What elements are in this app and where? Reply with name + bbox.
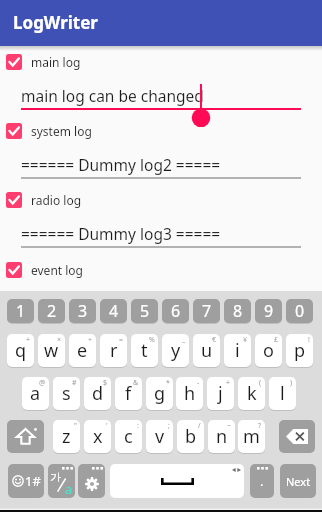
staticText: s <box>62 381 71 406</box>
staticText: t <box>141 338 148 363</box>
button[interactable]: z <box>53 420 80 453</box>
button[interactable]: i <box>224 334 251 367</box>
staticText: ? <box>258 421 262 431</box>
staticText: x <box>93 424 103 449</box>
button[interactable]: main log <box>0 51 322 73</box>
button[interactable]: Space <box>110 464 244 498</box>
staticText: f <box>125 381 132 406</box>
staticText: - <box>197 378 200 388</box>
staticText: h <box>184 381 196 406</box>
staticText: i <box>235 338 240 363</box>
button[interactable]: o <box>255 334 282 367</box>
staticText: + <box>226 378 231 388</box>
button[interactable]: 9 <box>255 299 282 323</box>
staticText: ====== Dummy log2 ===== <box>21 154 221 175</box>
button[interactable]: h <box>176 377 203 410</box>
button[interactable]: system log <box>0 120 322 142</box>
staticText: d <box>92 381 104 406</box>
staticText: 3 <box>78 300 88 322</box>
button[interactable]: Backspace <box>279 420 315 453</box>
staticText: q <box>15 338 27 363</box>
button[interactable]: Settings <box>78 464 105 498</box>
button[interactable]: v <box>146 420 173 453</box>
button[interactable]: q <box>7 334 34 367</box>
staticText: r <box>110 338 118 363</box>
staticText: u <box>201 338 213 363</box>
staticText: 가 <box>50 470 61 484</box>
button[interactable]: 2 <box>38 299 65 323</box>
staticText: 8 <box>233 300 243 322</box>
staticText: z <box>62 424 71 449</box>
button[interactable]: 6 <box>162 299 189 323</box>
button[interactable]: radio log <box>0 189 322 211</box>
staticText: 0 <box>295 300 305 322</box>
staticText: event log <box>31 262 83 278</box>
button[interactable]: m <box>238 420 265 453</box>
staticText: 9 <box>264 300 274 322</box>
staticText: + <box>26 335 31 345</box>
button[interactable]: Language <box>48 464 75 498</box>
staticText: 1 <box>16 300 26 322</box>
button[interactable]: 1 <box>7 299 34 323</box>
staticText: ~ <box>227 421 232 431</box>
button[interactable]: t <box>131 334 158 367</box>
staticText: LogWriter <box>13 11 98 34</box>
button[interactable]: p <box>286 334 313 367</box>
button[interactable]: f <box>115 377 142 410</box>
staticText: ; <box>168 421 170 431</box>
button[interactable]: 4 <box>100 299 127 323</box>
button[interactable]: j <box>207 377 234 410</box>
staticText: radio log <box>31 192 82 208</box>
button[interactable]: s <box>53 377 80 410</box>
staticText: ! <box>308 335 310 345</box>
staticText: # <box>72 378 77 388</box>
staticText: _ <box>182 335 186 345</box>
button[interactable]: k <box>238 377 265 410</box>
staticText: % <box>149 335 155 345</box>
staticText: e <box>77 338 88 363</box>
staticText: 6 <box>171 300 181 322</box>
staticText: j <box>218 381 223 406</box>
button[interactable]: 5 <box>131 299 158 323</box>
button[interactable]: Next <box>280 464 316 498</box>
staticText: k <box>247 381 257 406</box>
button[interactable]: g <box>146 377 173 410</box>
staticText: ¥ <box>243 335 248 345</box>
button[interactable]: n <box>208 420 235 453</box>
button[interactable]: w <box>38 334 65 367</box>
button[interactable]: 0 <box>286 299 313 323</box>
staticText: c <box>124 424 133 449</box>
staticText: $ <box>103 378 108 388</box>
staticText: . <box>260 472 264 490</box>
staticText: / <box>198 421 201 431</box>
staticText: ====== Dummy log3 ===== <box>21 223 221 244</box>
button[interactable]: 8 <box>224 299 251 323</box>
staticText: ÷ <box>88 335 93 345</box>
button[interactable]: y <box>162 334 189 367</box>
button[interactable]: b <box>177 420 204 453</box>
button[interactable]: u <box>193 334 220 367</box>
button[interactable]: l <box>269 377 296 410</box>
button[interactable]: x <box>84 420 111 453</box>
button[interactable]: e <box>69 334 96 367</box>
button[interactable]: . <box>250 464 274 498</box>
button[interactable]: c <box>115 420 142 453</box>
button[interactable]: d <box>84 377 111 410</box>
staticText: Next <box>286 474 311 489</box>
staticText: ( <box>259 378 262 388</box>
staticText: ' <box>106 421 108 431</box>
staticText: € <box>212 335 217 345</box>
button[interactable]: Shift <box>7 420 44 453</box>
staticText: system log <box>31 123 92 139</box>
button[interactable]: event log <box>0 259 322 281</box>
button[interactable]: a <box>22 377 49 410</box>
button[interactable]: 3 <box>69 299 96 323</box>
button[interactable]: 7 <box>193 299 220 323</box>
staticText: £ <box>274 335 279 345</box>
staticText: a <box>30 381 41 406</box>
button[interactable]: r <box>100 334 127 367</box>
staticText: * <box>166 378 170 388</box>
button[interactable]: LogWriter <box>0 0 322 46</box>
button[interactable]: 1# <box>8 464 44 498</box>
staticText: @ <box>39 378 46 388</box>
